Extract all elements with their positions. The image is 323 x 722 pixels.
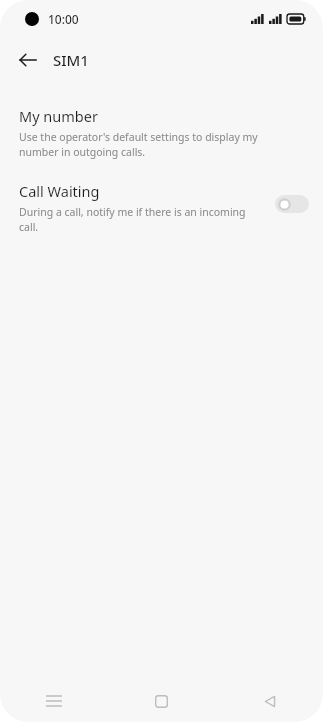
button[interactable]: Back xyxy=(10,42,46,78)
staticText: Call Waiting xyxy=(19,181,100,201)
button[interactable]: Back xyxy=(249,681,289,721)
button[interactable]: My number xyxy=(0,104,323,161)
staticText: 10:00 xyxy=(48,11,79,27)
staticText: Use the operator's default settings to d… xyxy=(19,130,297,159)
staticText: SIM1 xyxy=(53,50,89,70)
button[interactable]: Call Waiting xyxy=(0,179,323,236)
button[interactable]: Home xyxy=(141,681,181,721)
staticText: My number xyxy=(19,106,98,126)
button[interactable]: Call Waiting toggle xyxy=(275,195,309,213)
staticText: During a call, notify me if there is an … xyxy=(19,205,267,234)
button[interactable]: Recent apps xyxy=(34,681,74,721)
